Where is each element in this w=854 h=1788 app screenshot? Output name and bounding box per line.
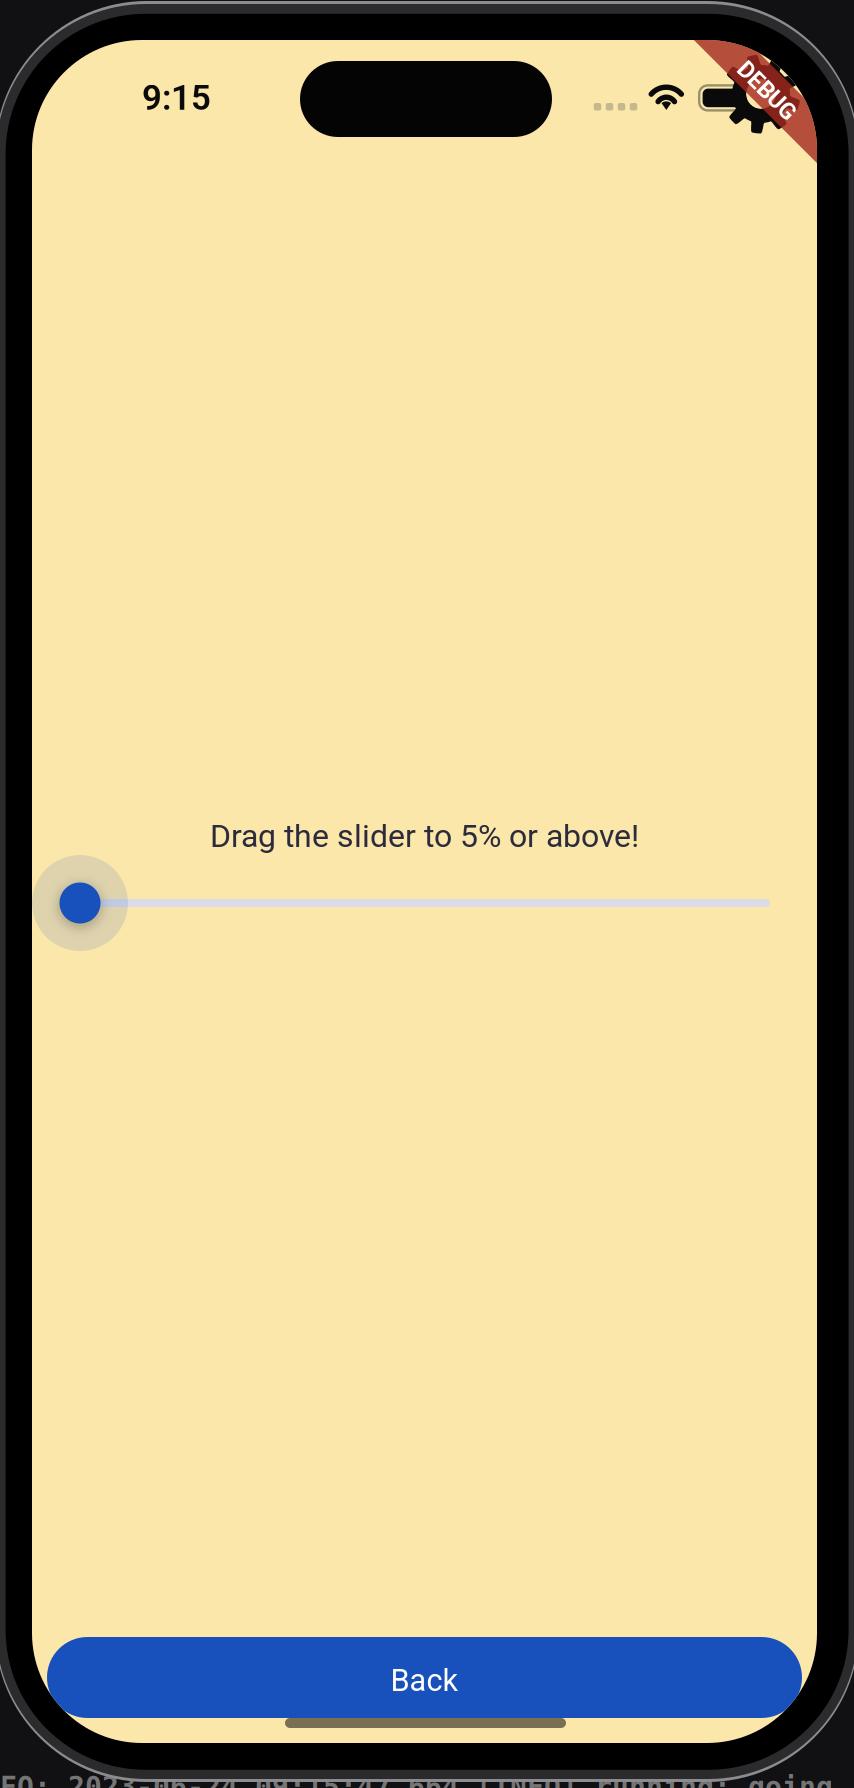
staticText: 9:15 (142, 78, 211, 118)
staticText: DEBUG (729, 87, 801, 113)
staticText: Back (390, 1662, 458, 1698)
staticText: Drag the slider to 5% or above! (210, 817, 639, 855)
button[interactable]: Back (47, 1637, 802, 1718)
staticText: FO: 2023-06-24 09:15:47.664 [INFO] runni… (0, 1771, 833, 1788)
